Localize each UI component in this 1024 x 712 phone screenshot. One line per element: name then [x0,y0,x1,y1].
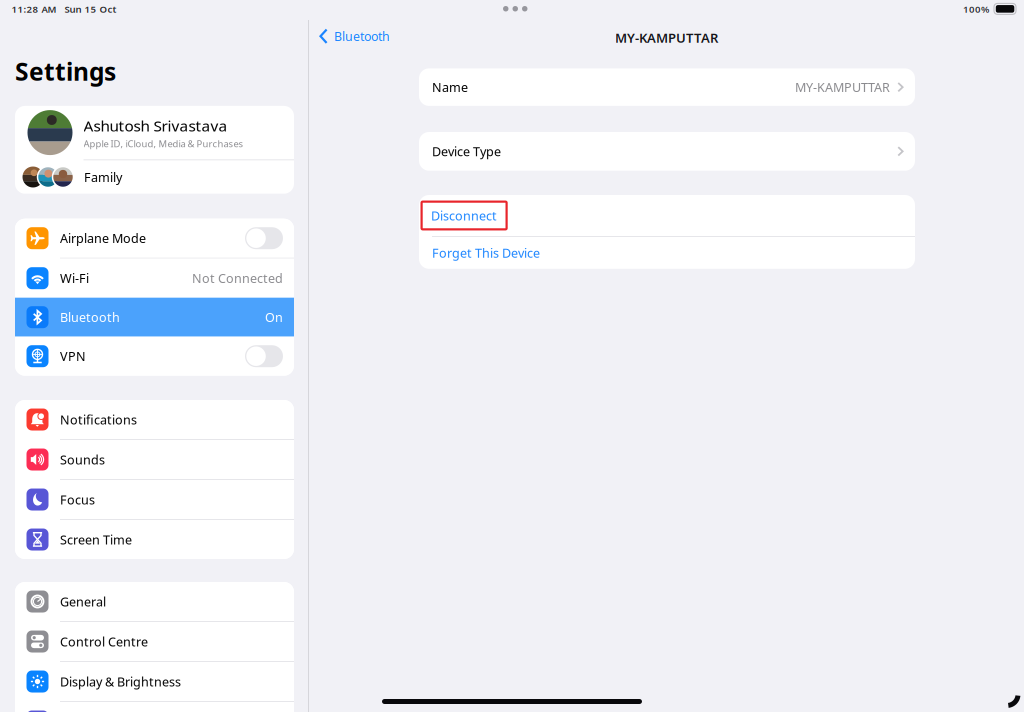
staticText: Disconnect [431,207,497,224]
button[interactable]: Wi-Fi [15,259,294,298]
staticText: Sounds [60,451,105,468]
staticText: Focus [60,491,95,508]
staticText: 11:28 AM [11,2,56,15]
staticText: Bluetooth [334,28,390,44]
button[interactable]: Focus [15,480,294,519]
staticText: On [265,309,283,326]
staticText: Bluetooth [60,309,120,326]
button[interactable]: Family [15,160,294,194]
staticText: Screen Time [60,531,132,548]
button[interactable]: Notifications [15,400,294,439]
staticText: Notifications [60,411,137,428]
button[interactable]: Control Centre [15,622,294,661]
button[interactable]: Bluetooth [319,28,390,44]
button[interactable]: Airplane Mode [15,219,294,258]
staticText: Sun 15 Oct [64,2,116,15]
staticText: MY-KAMPUTTAR [795,79,890,95]
staticText: Ashutosh Srivastava [83,115,227,136]
staticText: Family [84,169,122,185]
button[interactable]: Home Screen & App Library [15,702,294,712]
staticText: Name [432,79,468,95]
button[interactable]: VPN [15,337,294,376]
staticText: Forget This Device [432,245,540,261]
button[interactable]: Sounds [15,440,294,479]
staticText: Display & Brightness [60,673,181,690]
staticText: Apple ID, iCloud, Media & Purchases [83,137,243,150]
staticText: Not Connected [192,270,283,287]
staticText: MY-KAMPUTTAR [615,29,718,46]
button[interactable]: Screen Time [15,520,294,559]
button[interactable]: Display & Brightness [15,662,294,701]
staticText: Wi-Fi [60,270,89,287]
staticText: Device Type [432,143,501,160]
staticText: Settings [15,55,116,88]
button[interactable]: Device Type [419,132,915,171]
button[interactable]: Bluetooth [15,298,294,337]
button[interactable]: Disconnect [419,195,915,236]
staticText: Airplane Mode [60,230,146,247]
staticText: Control Centre [60,633,148,650]
staticText: VPN [60,348,86,365]
button[interactable]: General [15,582,294,621]
staticText: 100% [963,2,989,15]
button[interactable]: Forget This Device [419,237,915,269]
button[interactable]: Ashutosh Srivastava [15,106,294,159]
staticText: General [60,593,106,610]
button[interactable]: Name [419,68,915,106]
